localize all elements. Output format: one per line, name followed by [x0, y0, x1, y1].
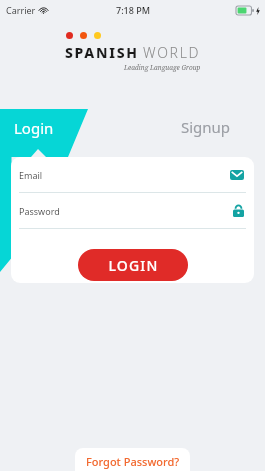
staticText: Email — [19, 169, 43, 181]
staticText: Forgot Password? — [86, 454, 180, 469]
staticText: Login — [14, 118, 54, 138]
other: Email — [230, 170, 244, 180]
button[interactable]: Login tab — [0, 0, 265, 471]
staticText: Leading Language Group — [124, 63, 201, 72]
staticText: Signup — [181, 117, 231, 137]
button[interactable]: LOGIN — [78, 249, 188, 281]
button[interactable]: Email — [11, 157, 254, 193]
button[interactable]: Password — [11, 193, 254, 229]
staticText: Carrier — [6, 4, 36, 16]
staticText: 7:18 PM — [116, 4, 150, 16]
staticText: WORLD — [143, 43, 201, 62]
button[interactable]: Forgot Password? — [75, 448, 190, 471]
staticText: LOGIN — [108, 256, 159, 275]
other: Password — [233, 204, 244, 217]
staticText: Password — [19, 205, 60, 217]
staticText: SPANISH — [65, 43, 139, 62]
button[interactable]: Signup — [175, 112, 237, 142]
